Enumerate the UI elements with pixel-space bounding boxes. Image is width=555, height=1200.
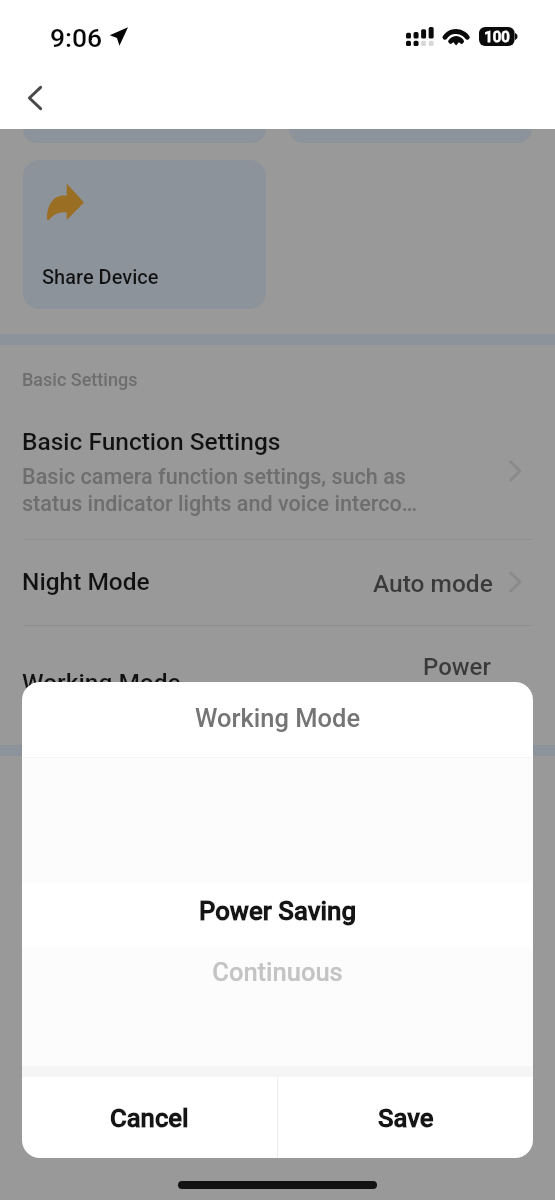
staticText: Save <box>378 1103 434 1133</box>
staticText: Basic camera function settings, such as … <box>22 464 418 516</box>
button[interactable]: Save <box>278 1077 533 1158</box>
staticText: Basic Function Settings <box>22 427 281 456</box>
button[interactable]: Back <box>11 69 59 117</box>
staticText: Power <box>423 653 491 681</box>
staticText: Cancel <box>110 1103 189 1133</box>
staticText: Working Mode <box>22 668 181 697</box>
staticText: 9:06 <box>50 22 103 53</box>
button[interactable]: Cancel <box>22 1077 277 1158</box>
staticText: Night Mode <box>22 567 150 596</box>
staticText: Share Device <box>42 265 159 288</box>
button[interactable]: Share Device <box>23 160 266 309</box>
staticText: Auto mode <box>373 569 493 598</box>
staticText: Basic Settings <box>22 369 138 390</box>
staticText: Continuous <box>22 957 533 987</box>
staticText: Power Saving <box>22 896 533 926</box>
staticText: 100 <box>479 28 515 46</box>
staticText: Working Mode <box>22 703 533 733</box>
